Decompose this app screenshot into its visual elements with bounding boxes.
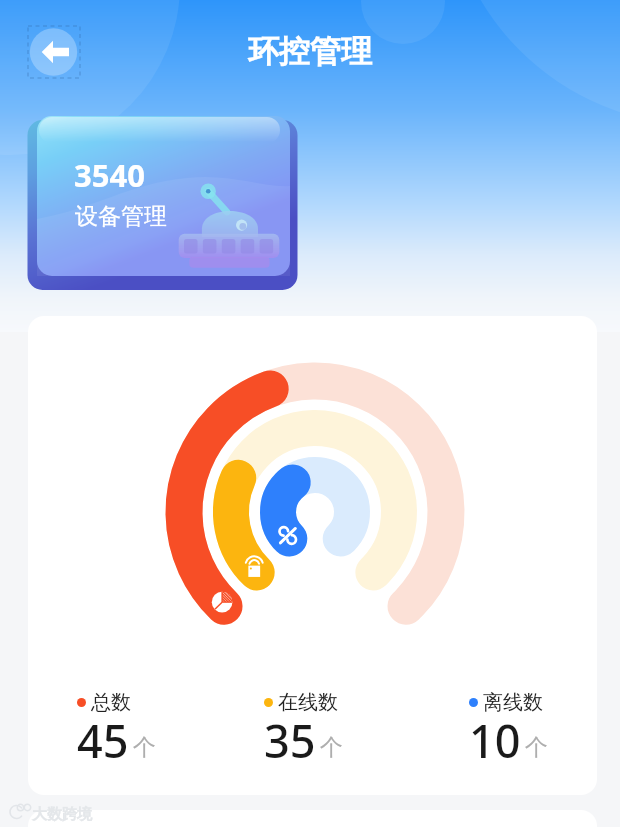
- staticText: 设备管理: [75, 202, 167, 231]
- staticText: 在线数: [278, 690, 338, 715]
- staticText: 10: [469, 710, 521, 771]
- staticText: 环控管理: [0, 32, 620, 71]
- staticText: 离线数: [483, 690, 543, 715]
- button[interactable]: 3540: [27, 116, 298, 290]
- staticText: 个: [133, 733, 156, 762]
- staticText: 35: [264, 710, 316, 771]
- button[interactable]: Back: [28, 26, 80, 78]
- staticText: 45: [77, 710, 129, 771]
- staticText: 3540: [74, 154, 145, 196]
- staticText: 个: [320, 733, 343, 762]
- staticText: 总数: [91, 690, 131, 715]
- staticText: 大数跨境: [32, 805, 92, 824]
- staticText: 个: [525, 733, 548, 762]
